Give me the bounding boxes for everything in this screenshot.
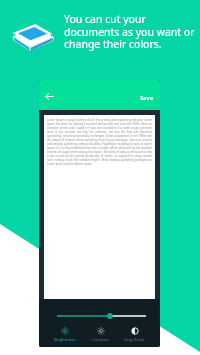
staticText: Lorem Ipsum is simply dummy text of the … <box>47 118 152 166</box>
staticText: Save <box>140 94 153 102</box>
button[interactable]: Contrast <box>91 327 110 343</box>
button[interactable]: Save <box>137 92 156 104</box>
button[interactable]: Gray Scale <box>123 327 146 343</box>
button[interactable]: Back <box>42 89 56 103</box>
staticText: You can cut your documents as you want o… <box>64 12 200 51</box>
staticText: Gray Scale <box>124 337 145 343</box>
staticText: Contrast <box>92 337 109 343</box>
button[interactable]: Brightness <box>53 327 77 343</box>
staticText: Brightness <box>54 337 76 343</box>
